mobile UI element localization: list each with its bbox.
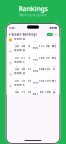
staticText: PF	[41, 89, 43, 90]
staticText: 15	[21, 79, 25, 82]
staticText: 9	[28, 56, 30, 59]
staticText: 30	[15, 56, 19, 59]
staticText: 30	[15, 79, 19, 82]
staticText: 100	[39, 79, 45, 82]
staticText: 30	[15, 67, 19, 71]
staticText: PCT	[34, 87, 37, 89]
staticText: 30	[15, 44, 19, 48]
staticText: L	[29, 54, 30, 56]
staticText: 108	[39, 56, 45, 59]
staticText: STRK	[52, 43, 56, 44]
staticText: 98	[46, 44, 50, 48]
button[interactable]: 2	[6, 49, 59, 60]
staticText: L	[29, 66, 30, 67]
button[interactable]: 1	[6, 37, 59, 48]
staticText: PF	[41, 43, 43, 44]
staticText: .800	[33, 43, 39, 50]
button[interactable]: 3	[6, 60, 59, 71]
staticText: 19	[27, 90, 31, 94]
staticText: Team E	[14, 83, 24, 86]
staticText: 104	[39, 67, 45, 71]
staticText: GP	[16, 54, 18, 56]
staticText: Standings at a glance	[19, 13, 47, 17]
staticText: 101	[45, 67, 51, 71]
staticText: PA	[47, 66, 49, 67]
staticText: PCT	[34, 41, 37, 43]
staticText: GP	[16, 66, 18, 67]
staticText: STRK	[52, 66, 56, 67]
staticText: 21	[21, 56, 25, 59]
button[interactable]: Filter	[53, 33, 57, 36]
staticText: W5	[52, 44, 57, 48]
staticText: W	[23, 54, 24, 56]
staticText: L3	[53, 90, 56, 94]
staticText: .500	[33, 77, 39, 84]
staticText: L	[29, 77, 30, 79]
staticText: 12	[27, 67, 31, 71]
staticText: 11	[21, 90, 25, 94]
staticText: PA	[47, 77, 49, 79]
staticText: 15	[27, 79, 31, 82]
staticText: .367	[33, 89, 39, 96]
staticText: STRK	[52, 54, 56, 56]
staticText: 108	[45, 90, 51, 94]
staticText: 99	[46, 56, 50, 59]
staticText: GP	[16, 89, 18, 90]
staticText: 96	[40, 90, 44, 94]
staticText: PCT	[34, 64, 37, 66]
staticText: PCT	[34, 75, 37, 77]
staticText: W	[23, 66, 24, 67]
staticText: Team B	[14, 48, 25, 52]
staticText: 30	[15, 90, 19, 94]
staticText: 112	[39, 44, 45, 48]
staticText: Team D	[14, 71, 25, 75]
staticText: 9:41	[9, 26, 16, 30]
staticText: .600	[33, 66, 39, 73]
staticText: STRK	[52, 77, 56, 79]
staticText: L1	[53, 67, 56, 71]
staticText: Team A	[14, 37, 25, 40]
staticText: GP	[16, 77, 18, 79]
staticText: STRK	[52, 89, 56, 90]
staticText: 6	[28, 44, 30, 48]
staticText: PA	[47, 54, 49, 56]
staticText: 18	[21, 67, 25, 71]
staticText: Rankings	[18, 4, 47, 13]
staticText: Season standings	[11, 33, 36, 36]
button[interactable]: 4	[6, 72, 59, 83]
staticText: W1	[52, 79, 57, 82]
staticText: GP	[16, 43, 18, 44]
staticText: Team C	[14, 60, 25, 63]
button[interactable]: 5	[6, 83, 59, 94]
staticText: 1	[10, 39, 11, 41]
staticText: 103	[45, 79, 51, 82]
staticText: PF	[41, 66, 43, 67]
staticText: W2	[52, 56, 57, 59]
staticText: 24	[21, 44, 25, 48]
button[interactable]: LIVE	[47, 33, 53, 36]
staticText: .700	[33, 54, 39, 61]
staticText: PCT	[34, 52, 37, 54]
staticText: LIVE	[48, 34, 52, 35]
staticText: W	[23, 77, 24, 79]
